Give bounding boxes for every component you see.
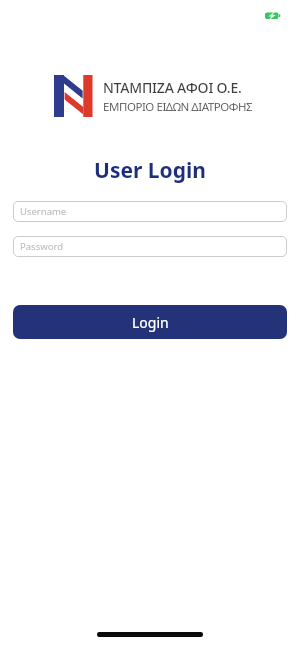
- staticText: User Login: [94, 156, 206, 185]
- staticText: Password: [20, 240, 63, 253]
- staticText: Login: [132, 313, 169, 332]
- button[interactable]: Password: [13, 236, 287, 257]
- staticText: ΕΜΠΟΡΙΟ ΕΙΔΩΝ ΔΙΑΤΡΟΦΗΣ: [103, 99, 253, 115]
- staticText: ΝΤΑΜΠΙΖΑ ΑΦΟΙ Ο.Ε.: [103, 78, 242, 97]
- staticText: Username: [20, 205, 67, 218]
- button[interactable]: Login: [13, 305, 287, 339]
- button[interactable]: Username: [13, 201, 287, 222]
